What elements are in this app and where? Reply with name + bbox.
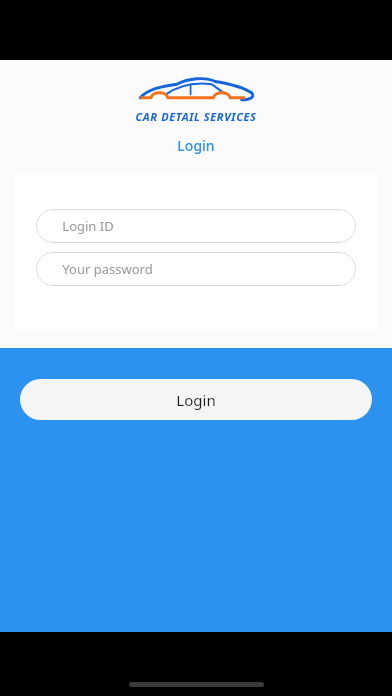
- staticText: Your password: [62, 260, 153, 278]
- button[interactable]: forgot password?: [139, 345, 254, 364]
- button[interactable]: Login ID: [36, 209, 356, 243]
- staticText: forgot password?: [139, 345, 254, 364]
- staticText: Login: [177, 136, 215, 155]
- button[interactable]: Login: [20, 379, 372, 420]
- other: Car Detail Services logo: [136, 74, 256, 108]
- button[interactable]: Login: [159, 130, 233, 161]
- staticText: Login ID: [62, 217, 114, 235]
- staticText: CAR DETAIL SERVICES: [135, 109, 257, 124]
- staticText: Login: [176, 390, 216, 410]
- button[interactable]: Your password: [36, 252, 356, 286]
